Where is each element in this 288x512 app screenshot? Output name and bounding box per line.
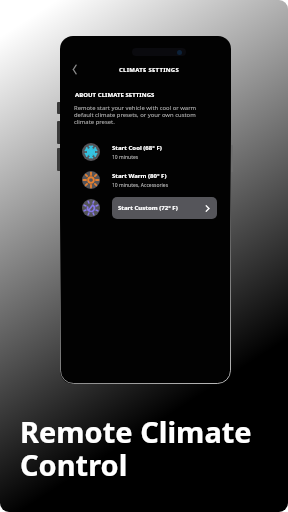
staticText: 10 minutes, Accessories (112, 182, 169, 189)
button[interactable]: Back (66, 61, 83, 78)
staticText: ABOUT CLIMATE SETTINGS (75, 91, 155, 99)
button[interactable]: Start Cool (68° F) (60, 138, 231, 166)
staticText: 10 minutes (112, 154, 139, 161)
staticText: Start Custom (72° F) (118, 204, 178, 212)
staticText: Remote start your vehicle with cool or w… (74, 104, 198, 126)
staticText: Remote Climate (20, 412, 252, 451)
button[interactable]: Start Custom (72° F) (112, 197, 217, 219)
staticText: Start Cool (68° F) (112, 144, 162, 152)
staticText: CLIMATE SETTINGS (119, 66, 180, 74)
staticText: Control (20, 445, 128, 484)
button[interactable]: Start Warm (80° F) (60, 166, 231, 194)
staticText: Start Warm (80° F) (112, 172, 167, 180)
